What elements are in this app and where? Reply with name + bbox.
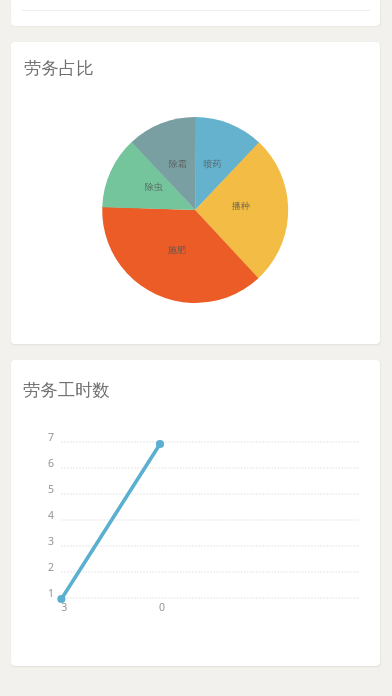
button[interactable]: 劳务占比 xyxy=(11,42,380,344)
staticText: 劳务工时数 xyxy=(23,379,110,401)
staticText: 劳务占比 xyxy=(24,57,94,79)
button[interactable]: 劳务工时数 xyxy=(11,360,380,666)
button[interactable] xyxy=(11,0,380,26)
